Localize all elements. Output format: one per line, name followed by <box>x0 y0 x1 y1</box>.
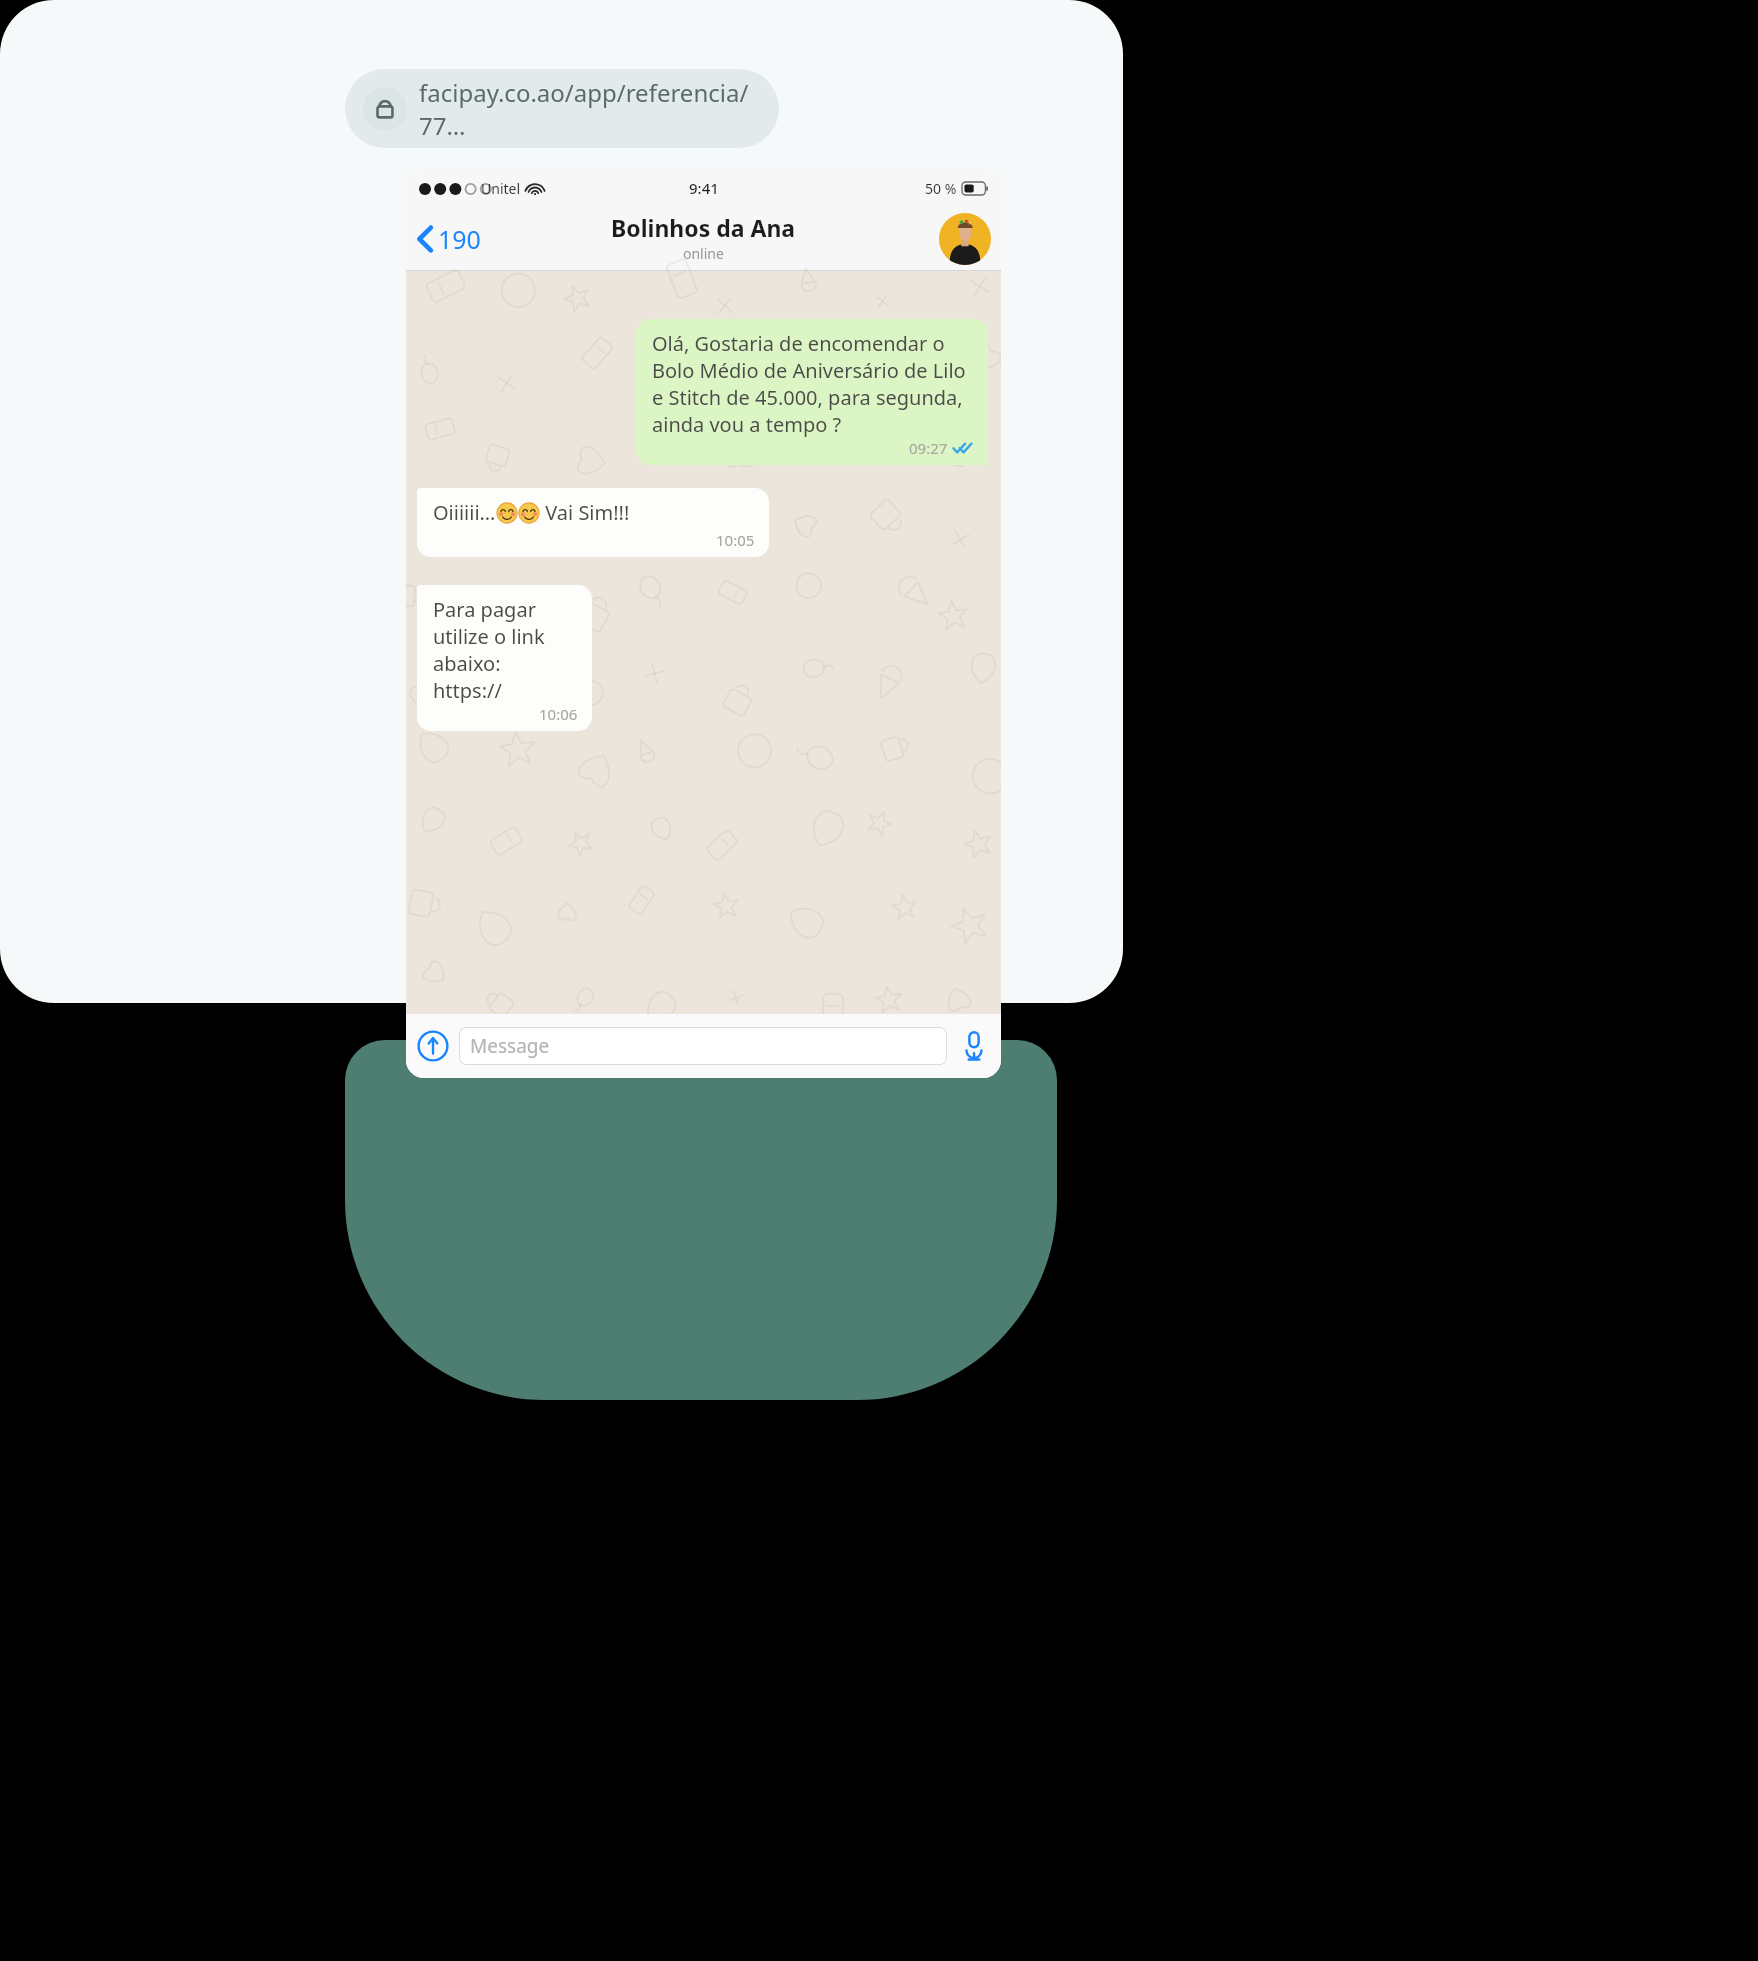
staticText: Olá, Gostaria de encomendar o Bolo Médio… <box>652 330 974 438</box>
button[interactable]: facipay.co.ao/app/referencia/77… <box>345 69 779 148</box>
button[interactable]: Message <box>459 1027 947 1065</box>
button[interactable]: Oiiiiii… <box>417 488 769 557</box>
staticText: Message <box>470 1033 550 1059</box>
staticText: 9:41 <box>689 178 719 198</box>
staticText: Unitel <box>481 179 521 198</box>
button[interactable]: Contact profile photo <box>939 213 991 265</box>
staticText: Vai Sim!!! <box>540 499 630 526</box>
staticText: 09:27 <box>909 438 948 458</box>
button[interactable]: Record voice message <box>957 1029 991 1063</box>
staticText: 50 % <box>925 179 957 198</box>
staticText: Para pagar utilize o link abaixo: <box>433 596 578 677</box>
button[interactable]: 190 <box>412 216 487 262</box>
button[interactable]: Olá, Gostaria de encomendar o Bolo Médio… <box>636 319 988 465</box>
button[interactable]: Attach <box>416 1029 450 1063</box>
staticText: Oiiiiii… <box>433 499 496 526</box>
staticText: 190 <box>438 222 481 256</box>
staticText: facipay.co.ao/app/referencia/77… <box>419 76 779 142</box>
staticText: Bolinhos da Ana <box>611 212 796 243</box>
button[interactable]: Para pagar utilize o link abaixo: <box>417 585 592 731</box>
staticText: 10:05 <box>716 530 755 550</box>
staticText: online <box>683 244 724 263</box>
staticText: https://facipay.co.ao/app/refer… <box>433 677 578 704</box>
staticText: 10:06 <box>539 704 578 724</box>
